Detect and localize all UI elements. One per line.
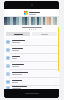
button[interactable]: App logo [4, 9, 59, 16]
button[interactable]: Open [4, 54, 59, 61]
button[interactable]: Open [4, 38, 59, 45]
button[interactable]: Open [4, 46, 59, 53]
button[interactable]: Featured banner [4, 17, 59, 25]
button[interactable] [32, 32, 57, 36]
button[interactable]: Open [4, 86, 59, 89]
button[interactable] [6, 32, 30, 36]
button[interactable]: Open [4, 62, 59, 69]
button[interactable] [4, 25, 59, 31]
other: App logo [24, 11, 28, 15]
button[interactable]: Open [4, 70, 59, 77]
button[interactable]: Open [4, 78, 59, 85]
